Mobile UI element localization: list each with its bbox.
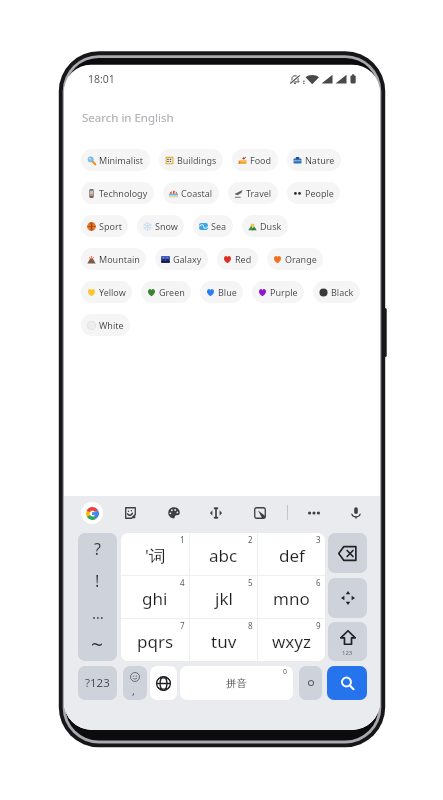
button[interactable]: Shift: [328, 622, 367, 661]
staticText: Orange: [285, 253, 317, 265]
staticText: 拼音: [226, 677, 247, 690]
staticText: Red: [235, 253, 252, 265]
button[interactable]: Mountain: [81, 248, 146, 270]
staticText: Travel: [246, 187, 272, 199]
button[interactable]: 8: [190, 619, 257, 661]
staticText: 3: [316, 534, 321, 545]
staticText: Nature: [305, 154, 335, 166]
button[interactable]: White: [81, 314, 130, 336]
button[interactable]: People: [287, 182, 340, 204]
button[interactable]: Snow: [137, 215, 184, 237]
button[interactable]: Emoji and comma: [123, 666, 147, 700]
button[interactable]: Backspace: [328, 533, 367, 573]
staticText: ,: [132, 683, 135, 698]
staticText: 4: [180, 577, 185, 588]
button[interactable]: ?: [78, 533, 117, 565]
button[interactable]: Change language: [150, 666, 177, 700]
button[interactable]: Google: [81, 502, 103, 524]
button[interactable]: Dusk: [242, 215, 288, 237]
button[interactable]: Purple: [252, 281, 304, 303]
button[interactable]: 1: [121, 533, 189, 575]
staticText: jkl: [215, 587, 233, 610]
button[interactable]: Travel: [228, 182, 278, 204]
button[interactable]: Red: [217, 248, 258, 270]
staticText: !: [95, 570, 100, 592]
staticText: Yellow: [99, 286, 126, 298]
button[interactable]: Translate: [249, 502, 271, 524]
staticText: ?123: [85, 675, 110, 691]
button[interactable]: More options: [303, 502, 325, 524]
staticText: Black: [331, 286, 354, 298]
staticText: 6: [316, 577, 321, 588]
staticText: Snow: [155, 220, 178, 232]
button[interactable]: Blue: [200, 281, 243, 303]
button[interactable]: Text editing: [205, 502, 227, 524]
staticText: Search in English: [82, 110, 174, 126]
button[interactable]: 4: [121, 576, 189, 618]
button[interactable]: !: [78, 565, 117, 597]
staticText: def: [279, 544, 305, 567]
button[interactable]: 3: [258, 533, 325, 575]
staticText: 0: [283, 667, 288, 677]
button[interactable]: Sea: [193, 215, 233, 237]
staticText: Coastal: [181, 187, 213, 199]
button[interactable]: Buildings: [159, 149, 223, 171]
staticText: 123: [342, 649, 353, 657]
button[interactable]: Green: [141, 281, 191, 303]
staticText: 18:01: [88, 72, 115, 86]
button[interactable]: 2: [190, 533, 257, 575]
button[interactable]: Move cursor: [328, 578, 367, 618]
staticText: Minimalist: [99, 154, 144, 166]
staticText: pqrs: [137, 630, 174, 653]
staticText: 8: [248, 620, 253, 631]
button[interactable]: Yellow: [81, 281, 132, 303]
staticText: …: [92, 603, 104, 623]
staticText: ~: [91, 630, 104, 659]
staticText: '词: [145, 544, 166, 567]
button[interactable]: Search: [327, 666, 367, 700]
staticText: Technology: [99, 187, 148, 199]
staticText: Buildings: [177, 154, 217, 166]
button[interactable]: Themes: [163, 502, 185, 524]
staticText: Sea: [211, 220, 227, 232]
button[interactable]: Orange: [267, 248, 323, 270]
button[interactable]: 5: [190, 576, 257, 618]
staticText: tuv: [211, 630, 237, 653]
button[interactable]: Stickers: [119, 502, 141, 524]
button[interactable]: …: [78, 597, 117, 629]
button[interactable]: ~: [78, 629, 117, 661]
staticText: wxyz: [272, 630, 312, 653]
button[interactable]: 拼音: [180, 666, 293, 700]
staticText: Sport: [99, 220, 122, 232]
staticText: abc: [209, 544, 238, 567]
staticText: Food: [250, 154, 272, 166]
staticText: 2: [248, 534, 253, 545]
button[interactable]: Food: [232, 149, 278, 171]
staticText: Purple: [270, 286, 298, 298]
staticText: Blue: [218, 286, 237, 298]
button[interactable]: Period: [299, 666, 322, 700]
staticText: Mountain: [99, 253, 140, 265]
staticText: ghi: [142, 587, 168, 610]
button[interactable]: Technology: [81, 182, 154, 204]
button[interactable]: 7: [121, 619, 189, 661]
staticText: Galaxy: [173, 253, 202, 265]
button[interactable]: Coastal: [163, 182, 219, 204]
button[interactable]: Nature: [287, 149, 341, 171]
button[interactable]: Galaxy: [155, 248, 208, 270]
button[interactable]: Voice input: [345, 502, 367, 524]
staticText: Green: [159, 286, 185, 298]
staticText: ?: [94, 538, 101, 560]
button[interactable]: ?123: [78, 666, 117, 700]
staticText: White: [99, 319, 124, 331]
button[interactable]: Sport: [81, 215, 128, 237]
button[interactable]: Black: [313, 281, 360, 303]
staticText: 1: [180, 534, 185, 545]
staticText: 9: [316, 620, 321, 631]
button[interactable]: 9: [258, 619, 325, 661]
staticText: Dusk: [260, 220, 282, 232]
staticText: 7: [180, 620, 185, 631]
button[interactable]: Minimalist: [81, 149, 150, 171]
staticText: 5: [248, 577, 253, 588]
button[interactable]: 6: [258, 576, 325, 618]
